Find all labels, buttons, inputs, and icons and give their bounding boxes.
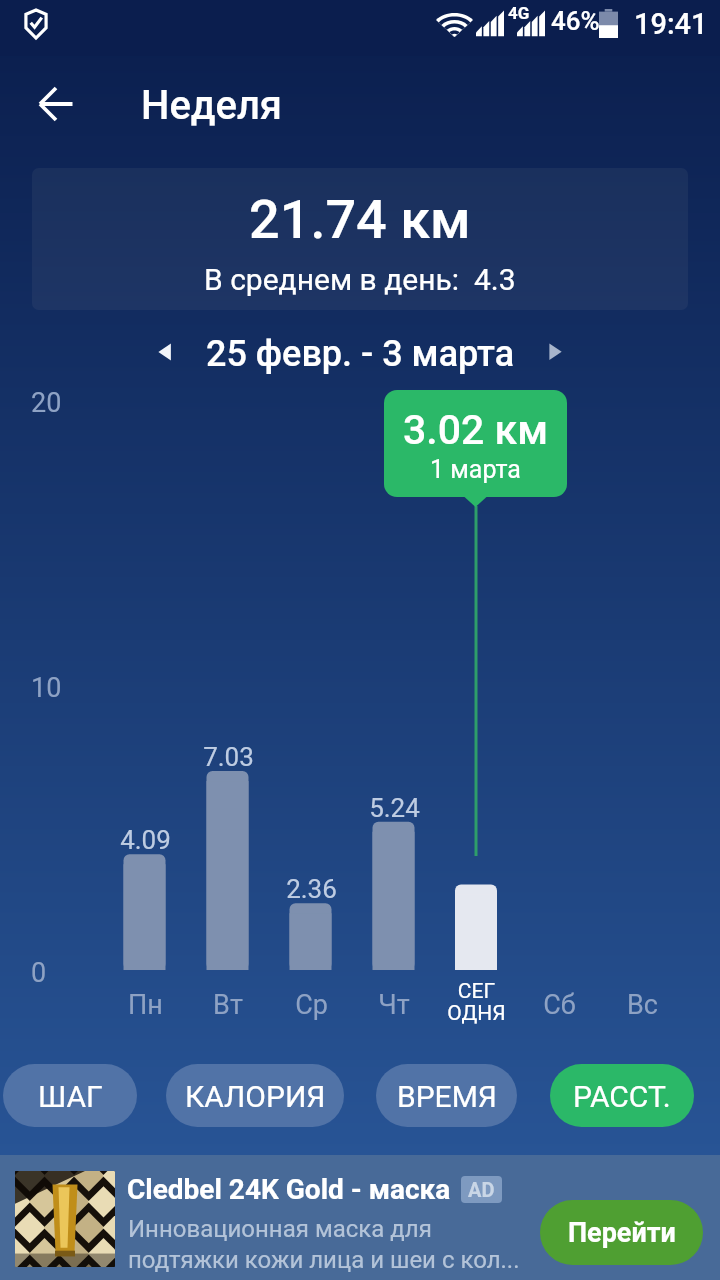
button[interactable]: Next week: [530, 317, 580, 367]
staticText: 1 марта: [430, 455, 521, 484]
staticText: Неделя: [141, 82, 283, 129]
staticText: ШАГ: [38, 1079, 103, 1114]
button[interactable]: Previous week: [139, 317, 189, 367]
staticText: 0: [31, 957, 47, 989]
staticText: 19:41: [634, 7, 708, 41]
button[interactable]: КАЛОРИЯ: [166, 1064, 344, 1127]
button[interactable]: 21.74 км: [32, 168, 688, 310]
staticText: Cledbel 24K Gold - маска: [127, 1173, 451, 1206]
staticText: Инновационная маска для подтяжки кожи ли…: [128, 1215, 520, 1274]
staticText: Вт: [213, 989, 243, 1021]
staticText: 2.36: [286, 874, 337, 904]
button[interactable]: Back: [20, 68, 92, 140]
staticText: 5.24: [369, 793, 420, 823]
button[interactable]: ВРЕМЯ: [376, 1064, 517, 1127]
staticText: 7.03: [203, 742, 254, 772]
staticText: 25 февр. - 3 марта: [206, 333, 515, 375]
staticText: СЕГ ОДНЯ: [447, 979, 506, 1026]
button[interactable]: Cledbel 24K Gold - маска: [0, 1155, 720, 1280]
staticText: ВРЕМЯ: [397, 1079, 497, 1114]
staticText: 10: [31, 672, 62, 704]
staticText: РАССТ.: [573, 1079, 671, 1114]
staticText: КАЛОРИЯ: [185, 1079, 326, 1114]
button[interactable]: 3.02 км: [384, 390, 567, 497]
staticText: 3.02 км: [403, 406, 548, 454]
staticText: 46%: [551, 6, 600, 36]
staticText: Вс: [627, 989, 658, 1021]
staticText: 20: [31, 387, 62, 419]
staticText: 4.09: [120, 825, 171, 855]
staticText: Чт: [378, 989, 410, 1021]
button[interactable]: ШАГ: [3, 1064, 137, 1127]
button[interactable]: РАССТ.: [550, 1064, 694, 1127]
staticText: Пн: [128, 989, 163, 1021]
staticText: 21.74 км: [249, 188, 471, 251]
button[interactable]: Перейти: [540, 1200, 703, 1265]
staticText: В среднем в день: 4.3: [204, 262, 516, 297]
staticText: AD: [468, 1178, 495, 1201]
staticText: Перейти: [568, 1217, 676, 1249]
staticText: Сб: [543, 989, 576, 1021]
staticText: Ср: [295, 989, 328, 1021]
staticText: 4G: [508, 3, 530, 23]
